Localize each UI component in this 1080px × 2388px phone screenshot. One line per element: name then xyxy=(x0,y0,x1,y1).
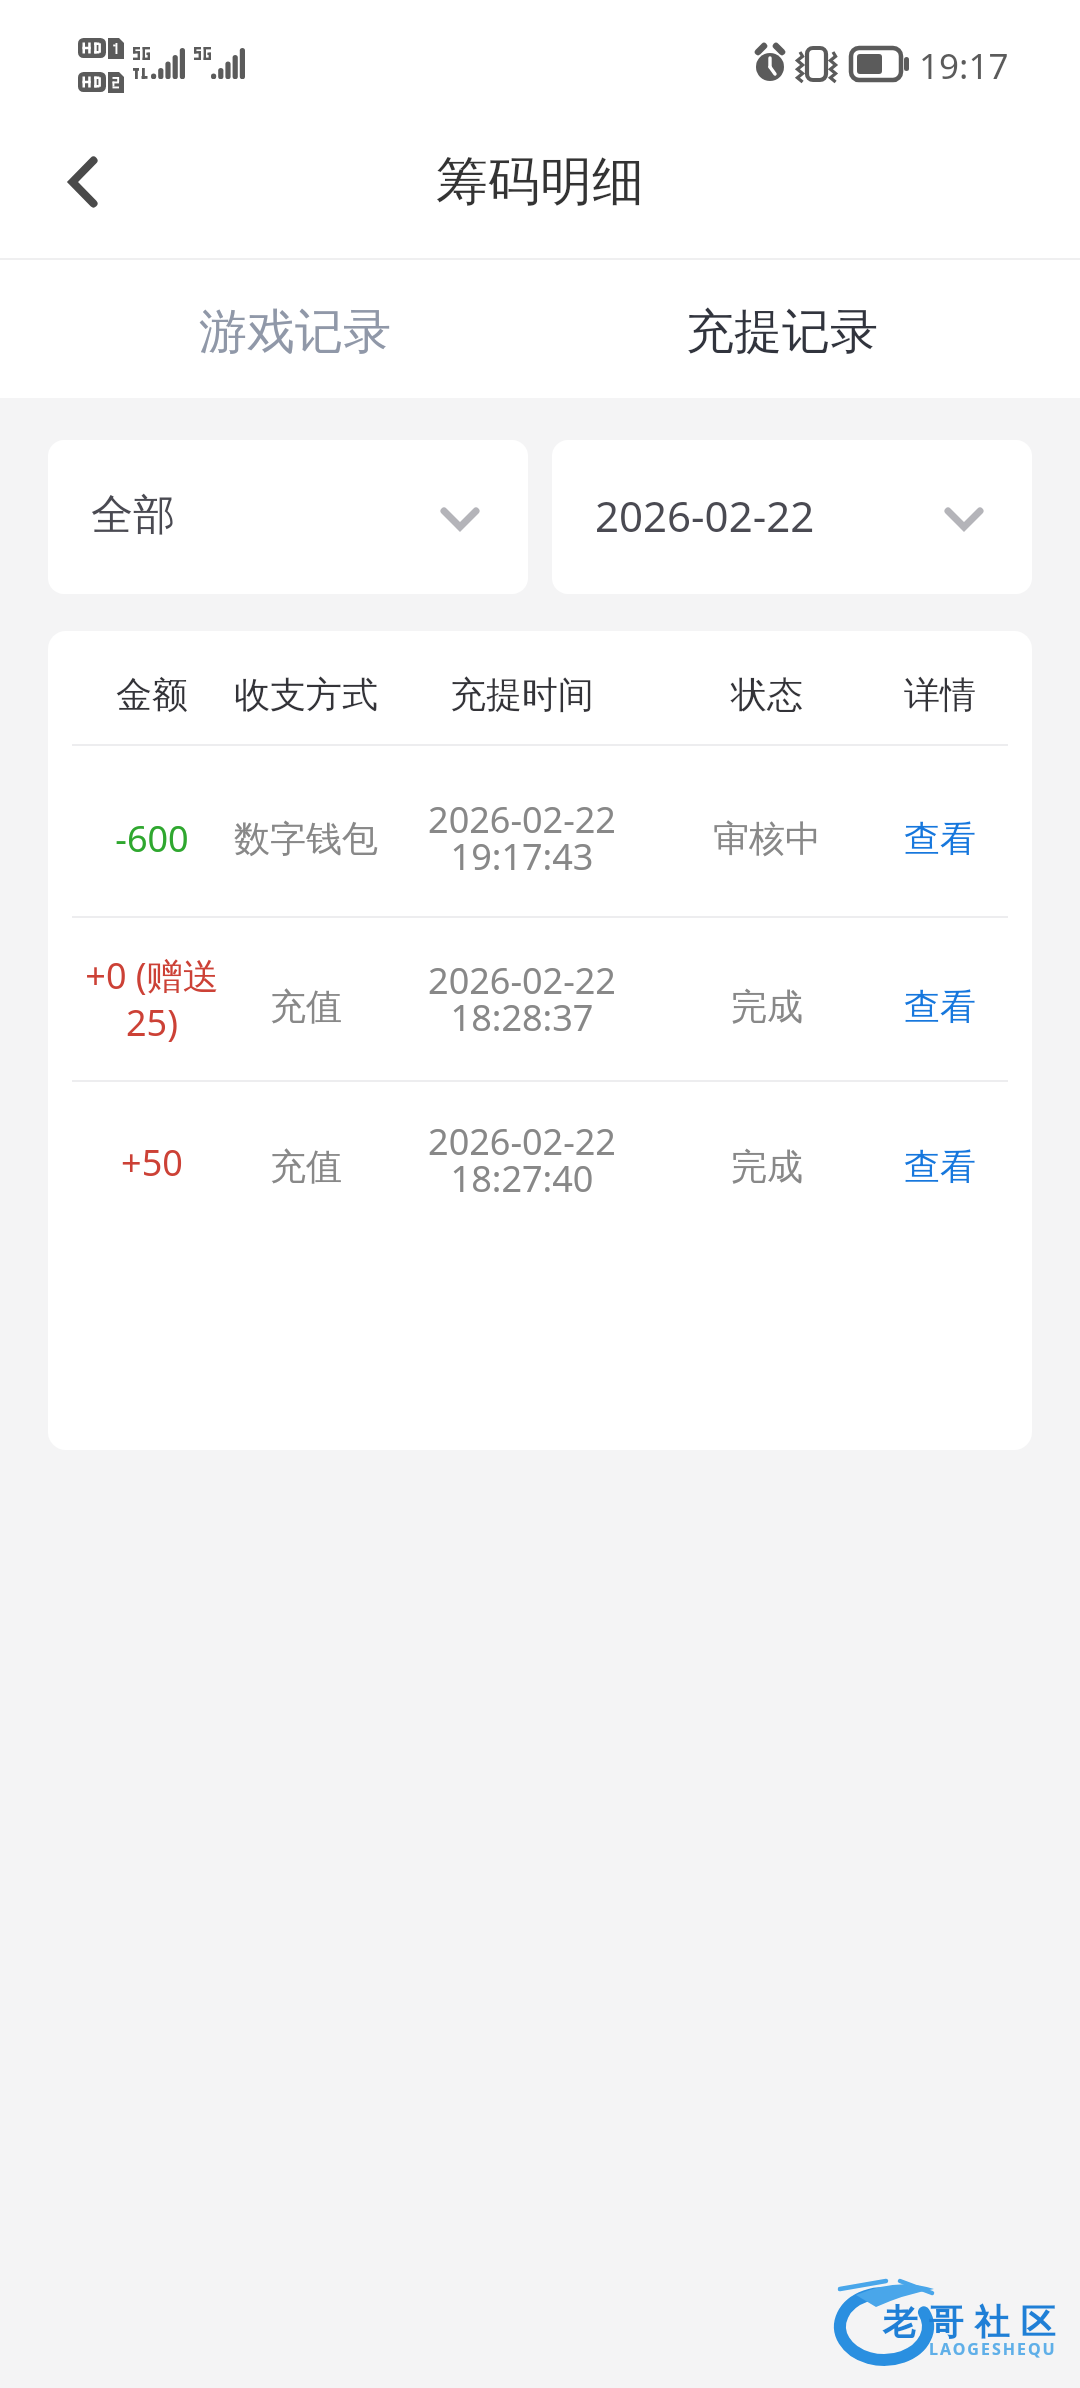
button[interactable]: 游戏记录 xyxy=(0,260,540,398)
staticText: 2026-02-22 18:27:40 xyxy=(428,1117,616,1203)
staticText: 充值 xyxy=(270,984,342,1029)
staticText: +0 (赠送 25) xyxy=(85,951,219,1046)
staticText: 查看 xyxy=(904,816,976,861)
staticText: 收支方式 xyxy=(234,672,378,717)
staticText: 筹码明细 xyxy=(436,149,644,215)
button[interactable]: 查看 xyxy=(870,753,1010,923)
staticText: 查看 xyxy=(904,984,976,1029)
button[interactable]: 充提记录 xyxy=(540,260,1080,398)
button[interactable]: 查看 xyxy=(870,925,1010,1087)
staticText: 2026-02-22 xyxy=(595,487,815,544)
staticText: 19:17 xyxy=(919,42,1009,90)
staticText: -600 xyxy=(115,814,189,863)
staticText: LAOGESHEQU xyxy=(929,2338,1057,2360)
staticText: 全部 xyxy=(91,489,175,542)
staticText: 充提时间 xyxy=(450,672,594,717)
staticText: 审核中 xyxy=(713,816,821,861)
staticText: +50 xyxy=(121,1138,183,1187)
staticText: 金额 xyxy=(116,672,188,717)
staticText: 查看 xyxy=(904,1144,976,1189)
staticText: 详情 xyxy=(904,672,976,717)
staticText: 数字钱包 xyxy=(234,816,378,861)
staticText: 2026-02-22 18:28:37 xyxy=(428,956,616,1042)
staticText: 老哥社区 xyxy=(877,2300,1061,2344)
button[interactable]: 查看 xyxy=(870,1089,1010,1244)
staticText: 2026-02-22 19:17:43 xyxy=(428,795,616,881)
button[interactable]: 全部 xyxy=(48,440,528,594)
staticText: 完成 xyxy=(731,984,803,1029)
staticText: 充提记录 xyxy=(686,302,878,362)
staticText: 充值 xyxy=(270,1144,342,1189)
staticText: 游戏记录 xyxy=(199,302,391,362)
staticText: 状态 xyxy=(731,672,803,717)
button[interactable]: Back xyxy=(42,144,124,226)
staticText: 完成 xyxy=(731,1144,803,1189)
button[interactable]: 2026-02-22 xyxy=(552,440,1032,594)
